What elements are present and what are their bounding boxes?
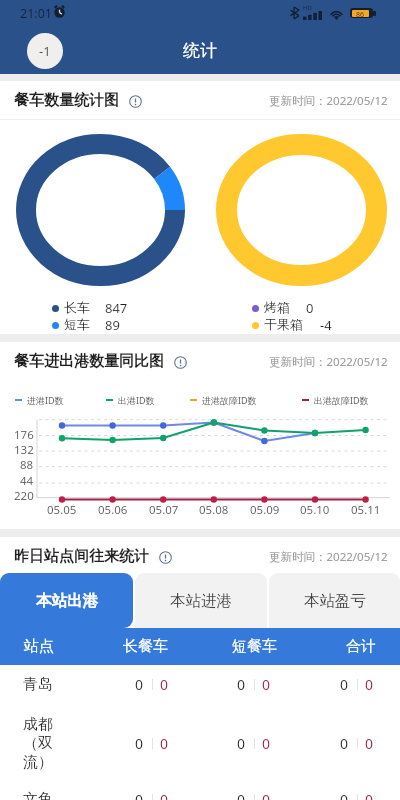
staticText: 出港ID数 (118, 394, 155, 406)
staticText: 847 (105, 299, 128, 317)
staticText: 132 (14, 442, 34, 458)
staticText: 餐车进出港数量同比图 (14, 352, 164, 371)
button[interactable]: 本站出港 (0, 573, 133, 628)
staticText: 0 (340, 734, 349, 753)
staticText: 05.11 (351, 502, 381, 518)
staticText: 青岛 (23, 675, 53, 694)
staticText: 烤箱 (264, 299, 290, 315)
staticText: 0 (135, 675, 144, 694)
staticText: 0 (365, 734, 374, 753)
staticText: 0 (262, 790, 271, 800)
button[interactable]: Back (27, 33, 63, 69)
staticText: 05.10 (300, 502, 330, 518)
staticText: 更新时间：2022/05/12 (269, 93, 388, 109)
staticText: 流） (23, 753, 53, 772)
staticText: 长车 (64, 299, 90, 315)
staticText: 本站盈亏 (304, 591, 366, 611)
staticText: 更新时间：2022/05/12 (269, 354, 388, 370)
staticText: 本站进港 (170, 591, 232, 611)
staticText: 本站出港 (36, 591, 98, 611)
staticText: 0 (160, 675, 169, 694)
staticText: 05.08 (199, 502, 229, 518)
staticText: 文鱼 (23, 790, 53, 800)
button[interactable]: Info (173, 355, 187, 369)
staticText: 0 (237, 675, 246, 694)
staticText: 进港ID数 (27, 394, 64, 406)
staticText: 220 (14, 488, 34, 504)
staticText: 更新时间：2022/05/12 (269, 549, 388, 565)
staticText: 05.06 (98, 502, 128, 518)
staticText: 餐车数量统计图 (14, 91, 119, 110)
staticText: 合计 (346, 637, 376, 656)
staticText: 89 (105, 316, 120, 334)
staticText: 出港故障ID数 (314, 394, 369, 406)
staticText: HD (303, 4, 312, 12)
staticText: 0 (160, 790, 169, 800)
staticText: 0 (262, 734, 271, 753)
staticText: 站点 (24, 637, 54, 656)
staticText: 21:01 (20, 5, 52, 22)
staticText: 成都 (23, 715, 53, 734)
staticText: 干果箱 (264, 316, 303, 332)
staticText: 短车 (64, 316, 90, 332)
staticText: 44 (20, 473, 34, 489)
button[interactable]: 青岛 (0, 665, 400, 704)
staticText: 0 (135, 790, 144, 800)
staticText: 进港故障ID数 (202, 394, 257, 406)
staticText: 05.09 (250, 502, 280, 518)
staticText: -4 (320, 316, 332, 334)
button[interactable]: 本站盈亏 (269, 573, 400, 628)
staticText: 短餐车 (232, 637, 277, 656)
staticText: 05.07 (149, 502, 179, 518)
staticText: 长餐车 (123, 637, 168, 656)
button[interactable]: 成都 (0, 707, 400, 779)
staticText: 昨日站点间往来统计 (14, 547, 149, 566)
staticText: 176 (14, 427, 34, 443)
staticText: 统计 (183, 40, 217, 61)
staticText: 88 (20, 457, 34, 473)
staticText: 0 (262, 675, 271, 694)
staticText: 0 (306, 299, 314, 317)
staticText: （双 (23, 734, 53, 753)
staticText: 0 (365, 790, 374, 800)
staticText: 0 (135, 734, 144, 753)
staticText: 0 (340, 790, 349, 800)
button[interactable]: Info (158, 550, 172, 564)
staticText: 0 (160, 734, 169, 753)
staticText: 05.05 (47, 502, 77, 518)
staticText: 0 (237, 734, 246, 753)
staticText: 86 (356, 10, 365, 17)
button[interactable]: 本站进港 (135, 573, 267, 628)
staticText: 0 (237, 790, 246, 800)
button[interactable]: Info (128, 94, 142, 108)
staticText: -1 (39, 42, 51, 60)
staticText: 0 (365, 675, 374, 694)
button[interactable]: 文鱼 (0, 779, 400, 800)
staticText: 0 (340, 675, 349, 694)
